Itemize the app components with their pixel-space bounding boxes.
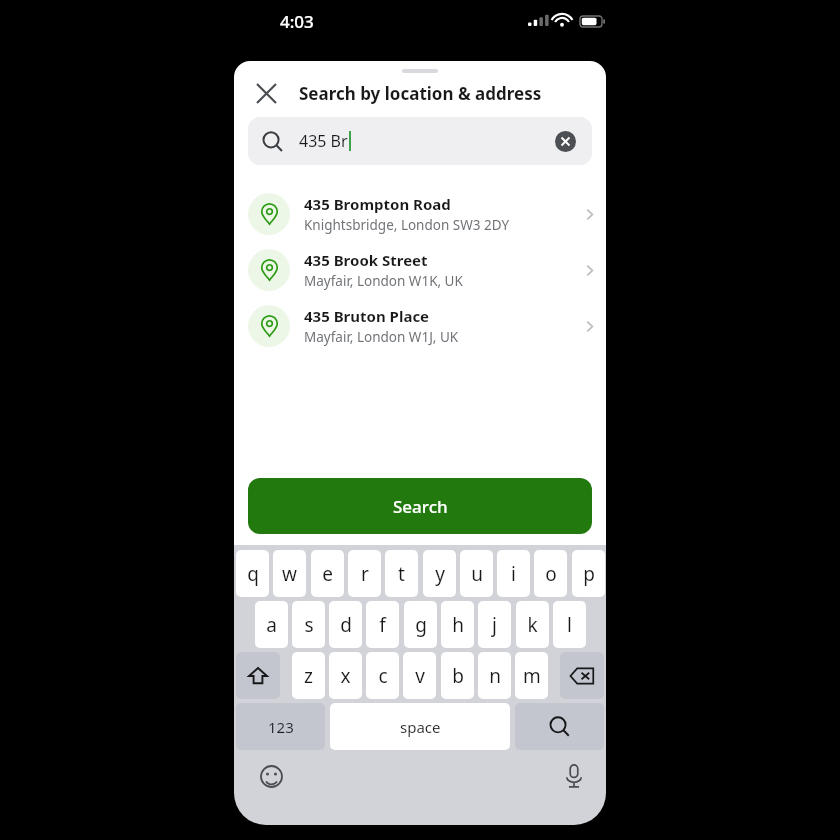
- staticText: i: [511, 561, 516, 587]
- staticText: 435 Br: [299, 130, 348, 152]
- staticText: Mayfair, London W1K, UK: [304, 272, 463, 290]
- button[interactable]: l: [553, 601, 586, 648]
- staticText: f: [379, 612, 386, 638]
- staticText: l: [567, 612, 572, 638]
- button[interactable]: 435 Brompton Road: [234, 186, 606, 242]
- button[interactable]: m: [515, 652, 548, 699]
- button[interactable]: c: [366, 652, 399, 699]
- staticText: b: [452, 663, 464, 689]
- staticText: e: [322, 561, 333, 587]
- button[interactable]: Clear text: [550, 126, 580, 156]
- button[interactable]: z: [292, 652, 325, 699]
- staticText: a: [266, 612, 277, 638]
- staticText: 435 Brompton Road: [304, 194, 451, 214]
- button[interactable]: w: [273, 550, 306, 597]
- staticText: Search: [393, 495, 448, 518]
- staticText: g: [415, 612, 427, 638]
- button[interactable]: p: [572, 550, 605, 597]
- button[interactable]: t: [385, 550, 418, 597]
- button[interactable]: n: [478, 652, 511, 699]
- button[interactable]: d: [329, 601, 362, 648]
- button[interactable]: 435 Brook Street: [234, 242, 606, 298]
- button[interactable]: g: [404, 601, 437, 648]
- button[interactable]: Shift: [236, 652, 280, 699]
- button[interactable]: Close: [243, 70, 289, 116]
- staticText: Search by location & address: [299, 82, 542, 105]
- staticText: j: [492, 612, 497, 638]
- button[interactable]: k: [516, 601, 549, 648]
- button[interactable]: 435 Bruton Place: [234, 298, 606, 354]
- staticText: v: [415, 663, 425, 689]
- button[interactable]: y: [423, 550, 456, 597]
- staticText: 435 Bruton Place: [304, 306, 430, 326]
- button[interactable]: u: [460, 550, 493, 597]
- button[interactable]: i: [497, 550, 530, 597]
- staticText: r: [361, 561, 369, 587]
- staticText: space: [400, 717, 441, 737]
- staticText: x: [340, 663, 351, 689]
- staticText: y: [435, 561, 445, 587]
- staticText: d: [340, 612, 352, 638]
- button[interactable]: 123: [236, 703, 325, 750]
- staticText: 4:03: [280, 10, 314, 33]
- staticText: z: [304, 663, 313, 689]
- staticText: q: [247, 561, 259, 587]
- button[interactable]: Backspace: [560, 652, 604, 699]
- button[interactable]: b: [441, 652, 474, 699]
- button[interactable]: s: [292, 601, 325, 648]
- button[interactable]: r: [348, 550, 381, 597]
- button[interactable]: space: [330, 703, 510, 750]
- button[interactable]: Voice input: [557, 759, 591, 793]
- staticText: Mayfair, London W1J, UK: [304, 328, 459, 346]
- button[interactable]: o: [534, 550, 567, 597]
- button[interactable]: 435 Br: [248, 117, 592, 165]
- staticText: c: [378, 663, 388, 689]
- staticText: 435 Brook Street: [304, 250, 428, 270]
- staticText: m: [523, 663, 541, 689]
- staticText: 123: [268, 717, 294, 737]
- staticText: s: [304, 612, 314, 638]
- button[interactable]: e: [311, 550, 344, 597]
- staticText: Knightsbridge, London SW3 2DY: [304, 216, 510, 234]
- staticText: t: [398, 561, 405, 587]
- staticText: p: [583, 561, 595, 587]
- button[interactable]: Search: [515, 703, 604, 750]
- button[interactable]: v: [403, 652, 436, 699]
- button[interactable]: h: [441, 601, 474, 648]
- staticText: u: [471, 561, 483, 587]
- staticText: n: [489, 663, 501, 689]
- button[interactable]: Emoji: [254, 759, 288, 793]
- button[interactable]: j: [478, 601, 511, 648]
- staticText: o: [545, 561, 557, 587]
- button[interactable]: Search: [248, 478, 592, 534]
- button[interactable]: x: [329, 652, 362, 699]
- staticText: w: [282, 561, 297, 587]
- button[interactable]: f: [366, 601, 399, 648]
- staticText: h: [452, 612, 464, 638]
- staticText: k: [527, 612, 538, 638]
- button[interactable]: q: [236, 550, 269, 597]
- button[interactable]: a: [255, 601, 288, 648]
